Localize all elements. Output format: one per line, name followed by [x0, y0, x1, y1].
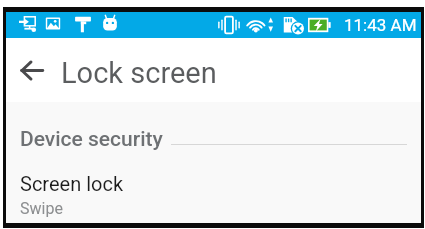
staticText: Swipe: [20, 199, 63, 218]
staticText: 11:43 AM: [344, 15, 417, 35]
button[interactable]: Screen lock: [6, 168, 421, 222]
staticText: Screen lock: [20, 172, 124, 195]
staticText: Lock screen: [61, 56, 217, 90]
staticText: Device security: [20, 127, 163, 152]
button[interactable]: Navigate up: [15, 53, 49, 87]
